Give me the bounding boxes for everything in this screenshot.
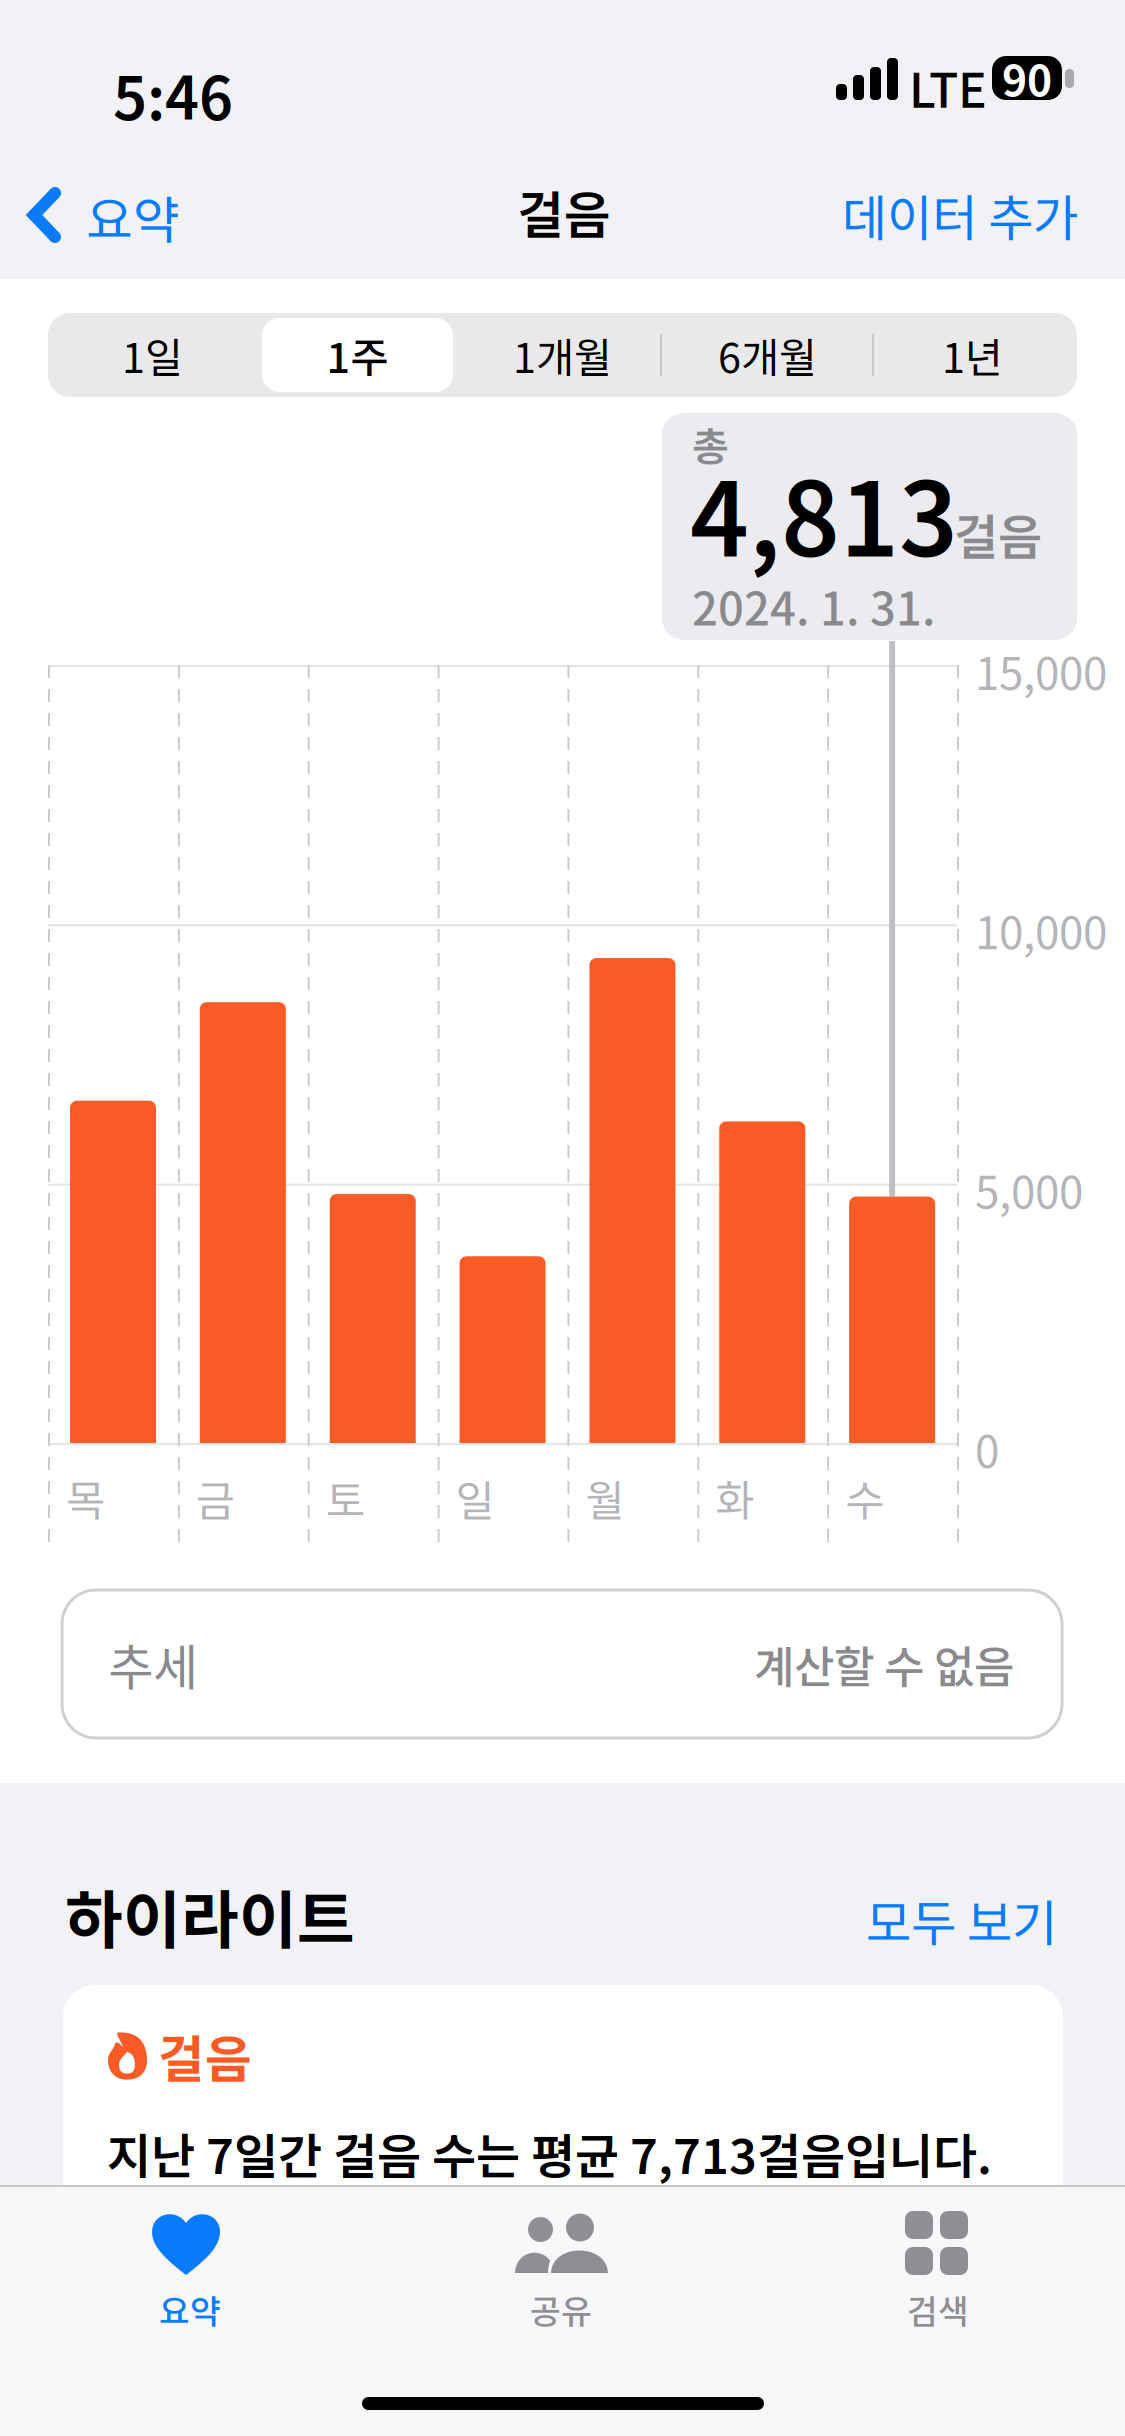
button[interactable]: 요약 xyxy=(0,144,210,268)
button[interactable]: 데이터 추가 xyxy=(834,144,1114,268)
staticText: LTE xyxy=(909,52,987,121)
staticText: 5,000 xyxy=(975,1158,1083,1221)
staticText: 0 xyxy=(975,1417,999,1481)
staticText: 5:46 xyxy=(113,52,233,137)
staticText: 1년 xyxy=(942,325,1003,385)
button[interactable]: 1개월 xyxy=(460,313,665,397)
button[interactable]: 1일 xyxy=(50,313,255,397)
staticText: 화 xyxy=(715,1467,754,1529)
staticText: 검색 xyxy=(907,2285,969,2333)
staticText: 6개월 xyxy=(718,325,817,385)
staticText: 걸음 xyxy=(517,175,611,248)
staticText: 목 xyxy=(66,1467,105,1529)
staticText: 90 xyxy=(1002,47,1052,109)
button[interactable]: 검색 xyxy=(750,2187,1125,2347)
staticText: 4,813 xyxy=(690,439,958,586)
staticText: 15,000 xyxy=(975,639,1107,703)
staticText: 1개월 xyxy=(513,325,612,385)
staticText: 요약 xyxy=(86,180,180,253)
staticText: 계산할 수 없음 xyxy=(754,1632,1014,1696)
staticText: 수 xyxy=(845,1467,884,1529)
staticText: 일 xyxy=(456,1467,495,1529)
button[interactable]: 공유 xyxy=(375,2187,750,2347)
staticText: 요약 xyxy=(159,2285,221,2333)
staticText: 하이라이트 xyxy=(65,1870,355,1961)
button[interactable]: 모두 보기 xyxy=(866,1884,1057,1955)
button[interactable]: 1년 xyxy=(870,313,1075,397)
staticText: 총 xyxy=(692,415,729,473)
staticText: 데이터 추가 xyxy=(842,179,1078,250)
button[interactable]: 걸음 xyxy=(63,1985,1063,2245)
staticText: 1일 xyxy=(122,325,183,385)
staticText: 추세 xyxy=(108,1628,198,1700)
button[interactable]: 6개월 xyxy=(665,313,870,397)
button[interactable]: 요약 xyxy=(0,2187,375,2347)
button[interactable]: 추세 xyxy=(62,1590,1062,1738)
staticText: 걸음 xyxy=(158,2019,252,2092)
staticText: 공유 xyxy=(530,2285,592,2333)
staticText: 모두 보기 xyxy=(866,1884,1057,1955)
staticText: 월 xyxy=(585,1467,624,1529)
staticText: 금 xyxy=(196,1467,235,1529)
staticText: 지난 7일간 걸음 수는 평균 7,713걸음입니다. xyxy=(107,2118,992,2188)
staticText: 10,000 xyxy=(975,898,1107,962)
staticText: 토 xyxy=(326,1467,365,1529)
staticText: 걸음 xyxy=(954,499,1042,568)
button[interactable]: 1주 xyxy=(255,313,460,397)
staticText: 1주 xyxy=(326,325,388,385)
staticText: 2024. 1. 31. xyxy=(692,573,936,639)
